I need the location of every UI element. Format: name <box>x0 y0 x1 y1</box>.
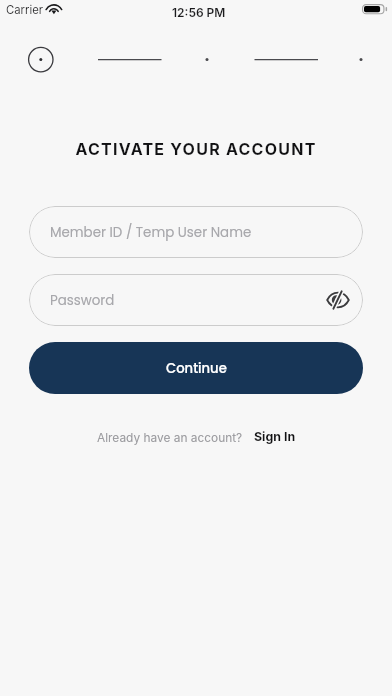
staticText: ACTIVATE YOUR ACCOUNT <box>0 139 392 158</box>
staticText: Continue <box>166 359 227 377</box>
button[interactable]: Member ID / Temp User Name <box>29 206 363 258</box>
staticText: 12:56 PM <box>172 5 226 20</box>
staticText: Password <box>50 291 115 310</box>
button[interactable]: Password <box>29 274 363 326</box>
button[interactable]: Show password <box>323 285 353 315</box>
button[interactable]: Continue <box>29 342 363 394</box>
staticText: Carrier <box>6 3 44 17</box>
staticText: Sign In <box>254 429 296 444</box>
staticText: Already have an account? <box>97 430 243 444</box>
staticText: Member ID / Temp User Name <box>50 223 252 242</box>
button[interactable]: Sign In <box>254 429 296 444</box>
